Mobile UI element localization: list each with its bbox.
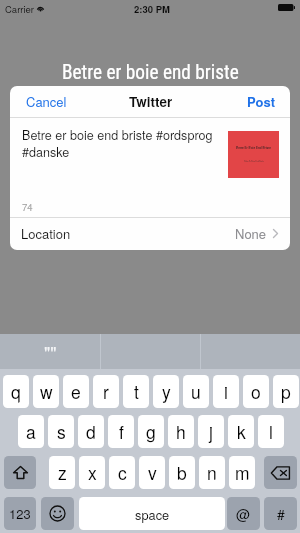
- staticText: 74: [22, 200, 33, 214]
- button[interactable]: g: [138, 415, 164, 448]
- staticText: u: [191, 379, 201, 404]
- button[interactable]: #: [264, 497, 297, 530]
- staticText: g: [146, 419, 156, 444]
- staticText: None: [235, 224, 267, 243]
- staticText: Betre er boie end briste #ordsprog #dans…: [22, 126, 220, 161]
- staticText: a: [26, 419, 36, 444]
- button[interactable]: Emoji: [41, 497, 74, 530]
- button[interactable]: Location: [10, 218, 290, 249]
- staticText: Location: [21, 224, 71, 243]
- staticText: 123: [9, 504, 31, 523]
- staticText: h: [176, 419, 186, 444]
- staticText: Post: [247, 92, 275, 111]
- staticText: space: [135, 505, 170, 523]
- button[interactable]: a: [18, 415, 44, 448]
- button[interactable]: z: [49, 456, 75, 489]
- staticText: x: [88, 460, 97, 485]
- staticText: p: [281, 379, 291, 404]
- button[interactable]: f: [108, 415, 134, 448]
- button[interactable]: c: [109, 456, 135, 489]
- staticText: Betre er boie end briste: [62, 61, 239, 84]
- button[interactable]: Delete: [264, 456, 297, 489]
- button[interactable]: @: [227, 497, 260, 530]
- staticText: w: [40, 379, 53, 404]
- button[interactable]: Cancel: [10, 86, 81, 117]
- button[interactable]: m: [229, 456, 255, 489]
- staticText: s: [57, 419, 66, 444]
- staticText: l: [269, 419, 273, 444]
- staticText: o: [251, 379, 261, 404]
- button[interactable]: n: [199, 456, 225, 489]
- button[interactable]: j: [198, 415, 224, 448]
- button[interactable]: d: [78, 415, 104, 448]
- staticText: Carrier: [5, 2, 35, 16]
- staticText: b: [177, 460, 187, 485]
- button[interactable]: Shift: [4, 456, 36, 489]
- button[interactable]: q: [3, 375, 29, 408]
- staticText: Cancel: [26, 92, 67, 111]
- staticText: y: [162, 379, 171, 404]
- staticText: #: [277, 504, 285, 524]
- button[interactable]: t: [123, 375, 149, 408]
- staticText: "": [44, 339, 57, 364]
- staticText: c: [118, 460, 127, 485]
- button[interactable]: w: [33, 375, 59, 408]
- staticText: d: [86, 419, 96, 444]
- staticText: e: [71, 379, 81, 404]
- staticText: v: [148, 460, 157, 485]
- staticText: n: [207, 460, 217, 485]
- staticText: i: [224, 379, 228, 404]
- button[interactable]: space: [79, 497, 225, 530]
- staticText: k: [237, 419, 246, 444]
- button[interactable]: p: [273, 375, 299, 408]
- staticText: Twitter: [129, 92, 173, 111]
- button[interactable]: Post: [233, 86, 290, 117]
- staticText: q: [11, 379, 21, 404]
- button[interactable]: y: [153, 375, 179, 408]
- staticText: 2:30 PM: [134, 2, 170, 16]
- staticText: Betre Er Boie End Briste: [244, 160, 264, 163]
- button[interactable]: e: [63, 375, 89, 408]
- staticText: f: [119, 419, 124, 444]
- button[interactable]: x: [79, 456, 105, 489]
- staticText: m: [235, 460, 250, 485]
- staticText: Betre Er Boie End Briste: [236, 146, 271, 150]
- button[interactable]: h: [168, 415, 194, 448]
- button[interactable]: o: [243, 375, 269, 408]
- staticText: z: [58, 460, 67, 485]
- button[interactable]: b: [169, 456, 195, 489]
- staticText: t: [134, 379, 139, 404]
- button[interactable]: v: [139, 456, 165, 489]
- button[interactable]: k: [228, 415, 254, 448]
- button[interactable]: r: [93, 375, 119, 408]
- button[interactable]: i: [213, 375, 239, 408]
- button[interactable]: l: [258, 415, 284, 448]
- staticText: j: [209, 419, 213, 444]
- staticText: r: [103, 379, 109, 404]
- button[interactable]: "": [0, 334, 100, 369]
- button[interactable]: s: [48, 415, 74, 448]
- button[interactable]: u: [183, 375, 209, 408]
- button[interactable]: 123: [4, 497, 36, 530]
- staticText: @: [236, 504, 251, 524]
